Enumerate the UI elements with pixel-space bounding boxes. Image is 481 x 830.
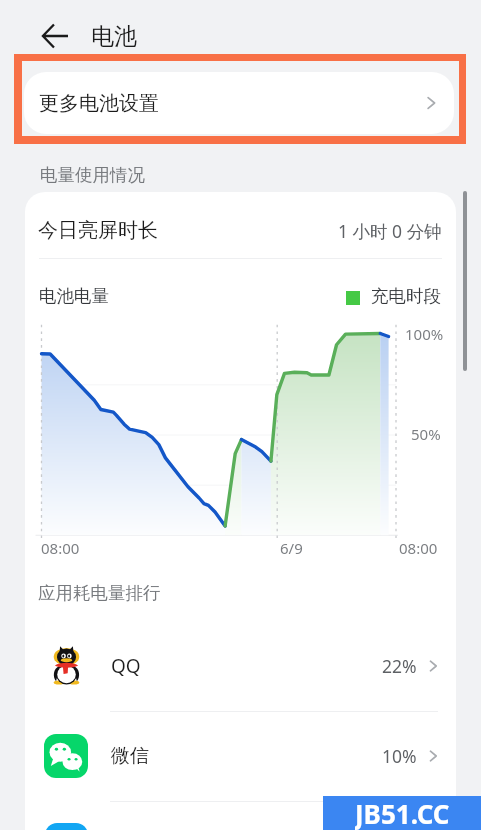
staticText: 电池 — [91, 22, 137, 51]
staticText: QQ — [111, 653, 141, 679]
staticText: 100% — [405, 324, 444, 344]
button[interactable]: QQ — [25, 627, 456, 705]
staticText: 应用耗电量排行 — [38, 582, 161, 604]
staticText: 电量使用情况 — [40, 164, 145, 186]
staticText: 6/9 — [280, 538, 303, 558]
staticText: 更多电池设置 — [39, 91, 159, 116]
staticText: 电池电量 — [39, 285, 109, 307]
button[interactable]: 更多电池设置 — [24, 72, 454, 134]
staticText: 08:00 — [41, 538, 80, 558]
button[interactable]: 微信 — [25, 717, 456, 795]
button[interactable]: 今日亮屏时长 — [25, 192, 456, 269]
staticText: 1 小时 0 分钟 — [338, 219, 442, 243]
staticText: 微信 — [111, 744, 149, 768]
button[interactable]: Back — [33, 14, 77, 58]
staticText: 10% — [382, 744, 417, 768]
staticText: 22% — [382, 654, 417, 678]
staticText: JB51.CC — [355, 796, 450, 830]
staticText: 充电时段 — [371, 285, 441, 307]
staticText: 08:00 — [399, 538, 438, 558]
staticText: 50% — [411, 424, 441, 444]
staticText: 今日亮屏时长 — [38, 218, 158, 243]
